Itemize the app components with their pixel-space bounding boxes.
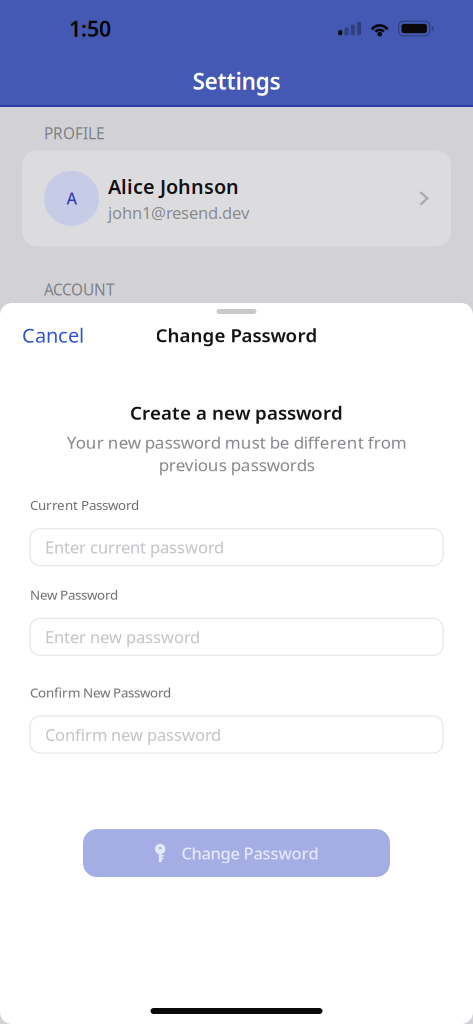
button[interactable]: Cancel: [0, 313, 106, 357]
staticText: Settings: [192, 66, 280, 96]
button[interactable]: Enter current password: [30, 529, 443, 566]
button[interactable]: A: [22, 150, 451, 246]
staticText: Current Password: [30, 496, 139, 514]
staticText: Cancel: [22, 322, 84, 348]
staticText: 1:50: [69, 14, 111, 43]
staticText: Enter current password: [45, 536, 224, 558]
button[interactable]: Enter new password: [30, 618, 443, 655]
staticText: PROFILE: [44, 123, 105, 143]
staticText: Create a new password: [130, 400, 343, 425]
button[interactable]: Change Password: [83, 829, 390, 877]
staticText: Change Password: [181, 842, 318, 864]
staticText: Your new password must be different from…: [66, 431, 406, 476]
button[interactable]: Confirm new password: [30, 716, 443, 753]
staticText: john1@resend.dev: [108, 201, 249, 223]
staticText: Confirm New Password: [30, 683, 171, 701]
staticText: A: [66, 188, 76, 209]
staticText: Change Password: [155, 323, 317, 347]
staticText: New Password: [30, 586, 118, 603]
staticText: Confirm new password: [45, 724, 221, 746]
staticText: Alice Johnson: [108, 173, 239, 199]
staticText: ACCOUNT: [44, 279, 115, 300]
staticText: Enter new password: [45, 626, 200, 648]
